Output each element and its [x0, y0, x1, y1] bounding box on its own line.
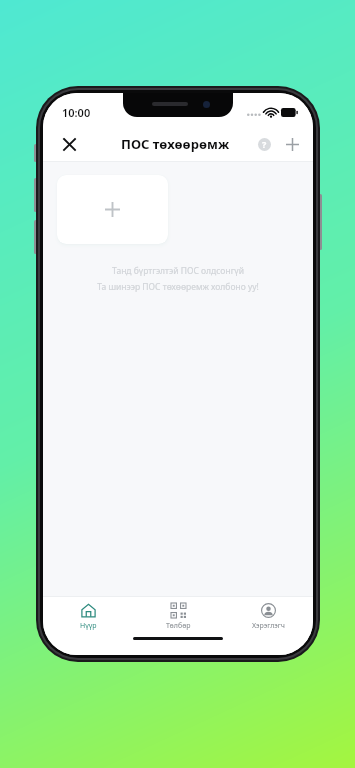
button[interactable]: Payment: [133, 597, 223, 637]
button[interactable]: Add POS device: [278, 130, 306, 158]
staticText: 10:00: [62, 105, 91, 120]
staticText: ПОС төхөөрөмж: [121, 135, 230, 153]
button[interactable]: Home: [43, 597, 133, 637]
staticText: Төлбөр: [166, 621, 191, 631]
staticText: Танд бүртгэлтэй ПОС олдсонгүй: [112, 265, 244, 277]
staticText: Нүүр: [80, 621, 97, 631]
staticText: Та шинээр ПОС төхөөремж холбоно уу!: [97, 281, 259, 293]
button[interactable]: Close: [53, 128, 85, 160]
staticText: ?: [262, 138, 267, 150]
staticText: Хэрэглэгч: [252, 621, 285, 631]
button[interactable]: Add new POS device: [57, 175, 168, 244]
button[interactable]: Help: [250, 130, 278, 158]
button[interactable]: User: [223, 597, 313, 637]
